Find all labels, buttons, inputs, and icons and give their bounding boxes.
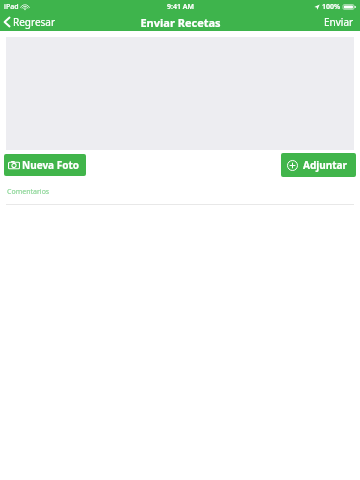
staticText: 9:41 AM [167,2,194,12]
staticText: Regresar [13,15,56,29]
staticText: 100% [322,2,341,12]
staticText: Enviar [324,15,354,29]
staticText: iPad [4,2,19,12]
staticText: Nueva Foto [22,158,80,172]
staticText: Adjuntar [303,158,348,172]
button[interactable]: Enviar [318,13,360,31]
button[interactable]: Nueva Foto [4,154,86,176]
staticText: Comentarios [7,187,50,197]
button[interactable]: Regresar [0,13,62,31]
button[interactable]: Adjuntar [281,153,356,177]
staticText: Enviar Recetas [140,15,221,30]
